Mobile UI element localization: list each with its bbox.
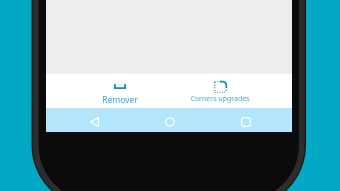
staticText: Remover — [102, 94, 138, 106]
button[interactable]: Home — [160, 112, 180, 132]
staticText: Corners upgrades — [190, 94, 250, 104]
button[interactable]: Recents — [236, 112, 256, 132]
button[interactable]: Back — [84, 112, 104, 132]
button[interactable]: Remover — [70, 74, 170, 106]
button[interactable]: Corners upgrades — [170, 74, 270, 104]
